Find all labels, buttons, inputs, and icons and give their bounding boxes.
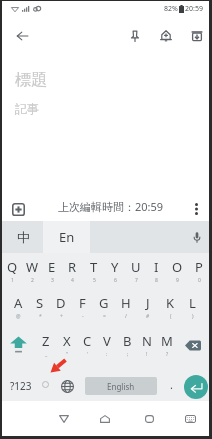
button[interactable]: Back bbox=[8, 22, 36, 50]
staticText: M bbox=[161, 332, 173, 350]
button[interactable]: Backspace bbox=[177, 329, 209, 361]
button[interactable]: X bbox=[56, 329, 77, 361]
staticText: ( bbox=[170, 313, 172, 320]
button[interactable]: Pin bbox=[121, 22, 148, 49]
staticText: W bbox=[26, 258, 39, 276]
button[interactable]: I bbox=[146, 253, 167, 288]
button[interactable]: Archive bbox=[183, 22, 210, 49]
staticText: 82% bbox=[164, 4, 178, 14]
staticText: " bbox=[66, 351, 69, 358]
staticText: E bbox=[48, 258, 56, 276]
button[interactable]: B bbox=[117, 329, 137, 361]
staticText: R bbox=[68, 258, 77, 276]
button[interactable]: K bbox=[159, 288, 181, 325]
staticText: F bbox=[79, 294, 86, 312]
button[interactable]: . bbox=[162, 371, 180, 397]
staticText: @ bbox=[16, 313, 21, 320]
staticText: S bbox=[36, 294, 44, 312]
button[interactable]: En bbox=[43, 221, 90, 253]
button[interactable]: O bbox=[167, 253, 188, 288]
button[interactable]: G bbox=[93, 288, 115, 325]
staticText: 6 bbox=[114, 277, 117, 284]
staticText: 0 bbox=[198, 277, 201, 284]
staticText: J bbox=[146, 294, 150, 312]
staticText: H bbox=[121, 294, 131, 312]
staticText: : bbox=[106, 351, 108, 358]
staticText: ; bbox=[127, 351, 129, 358]
staticText: Q bbox=[7, 258, 18, 276]
button[interactable]: C bbox=[77, 329, 97, 361]
staticText: 標題 bbox=[15, 70, 47, 90]
staticText: 9 bbox=[176, 277, 179, 284]
button[interactable]: More options bbox=[184, 197, 208, 221]
button[interactable]: English bbox=[85, 377, 157, 395]
staticText: ! bbox=[146, 351, 148, 358]
staticText: ) bbox=[192, 313, 194, 320]
staticText: . bbox=[170, 377, 173, 392]
button[interactable]: E bbox=[42, 253, 62, 288]
button[interactable]: Recent apps bbox=[138, 408, 160, 430]
staticText: Y bbox=[111, 258, 119, 276]
staticText: C bbox=[83, 332, 92, 350]
button[interactable]: V bbox=[97, 329, 117, 361]
staticText: G bbox=[99, 294, 109, 312]
button[interactable]: J bbox=[137, 288, 159, 325]
button[interactable]: R bbox=[62, 253, 83, 288]
staticText: K bbox=[166, 294, 175, 312]
staticText: / bbox=[125, 313, 127, 320]
staticText: 4 bbox=[71, 277, 74, 284]
staticText: ' bbox=[87, 351, 89, 358]
button[interactable]: Home bbox=[94, 408, 116, 430]
button[interactable]: M bbox=[157, 329, 177, 361]
staticText: 2 bbox=[31, 277, 34, 284]
button[interactable]: Change language bbox=[56, 371, 78, 401]
button[interactable]: Add bbox=[6, 197, 30, 221]
button[interactable]: Shift bbox=[2, 329, 35, 361]
staticText: 中 bbox=[17, 229, 30, 245]
staticText: 1 bbox=[11, 277, 14, 284]
button[interactable]: Z bbox=[35, 329, 56, 361]
staticText: D bbox=[56, 294, 66, 312]
staticText: = bbox=[103, 313, 106, 320]
staticText: O bbox=[172, 258, 183, 276]
staticText: 3 bbox=[51, 277, 54, 284]
staticText: 記事 bbox=[15, 101, 39, 116]
staticText: 7 bbox=[135, 277, 138, 284]
staticText: U bbox=[131, 258, 141, 276]
button[interactable]: T bbox=[83, 253, 104, 288]
button[interactable]: Q bbox=[2, 253, 22, 288]
button[interactable]: D bbox=[50, 288, 71, 325]
button[interactable]: S bbox=[29, 288, 50, 325]
button[interactable]: F bbox=[71, 288, 93, 325]
staticText: B bbox=[123, 332, 132, 350]
staticText: N bbox=[142, 332, 152, 350]
staticText: I bbox=[154, 258, 159, 276]
staticText: X bbox=[63, 332, 71, 350]
staticText: _ bbox=[45, 351, 48, 358]
button[interactable]: 中 bbox=[2, 221, 45, 253]
button[interactable]: Back bbox=[53, 408, 75, 430]
button[interactable]: A bbox=[8, 288, 29, 325]
staticText: 上次編輯時間：20:59 bbox=[58, 199, 164, 214]
staticText: * bbox=[39, 313, 42, 320]
button[interactable]: W bbox=[22, 253, 42, 288]
button[interactable]: H bbox=[115, 288, 137, 325]
button[interactable]: ?123 bbox=[4, 371, 38, 401]
button[interactable]: Enter bbox=[184, 375, 208, 399]
staticText: En bbox=[59, 228, 75, 246]
button[interactable]: Voice input bbox=[183, 221, 209, 253]
staticText: 5 bbox=[93, 277, 96, 284]
button[interactable]: Hide keyboard bbox=[179, 408, 201, 430]
button[interactable]: P bbox=[188, 253, 209, 288]
staticText: P bbox=[195, 258, 203, 276]
button[interactable]: L bbox=[181, 288, 203, 325]
button[interactable]: Add reminder bbox=[152, 22, 179, 49]
staticText: # bbox=[146, 313, 150, 320]
staticText: English bbox=[107, 381, 135, 392]
button[interactable]: N bbox=[137, 329, 157, 361]
button[interactable]: U bbox=[125, 253, 146, 288]
button[interactable]: Emoji bbox=[36, 369, 54, 399]
staticText: - bbox=[82, 313, 84, 320]
staticText: 8 bbox=[155, 277, 158, 284]
button[interactable]: Y bbox=[104, 253, 125, 288]
